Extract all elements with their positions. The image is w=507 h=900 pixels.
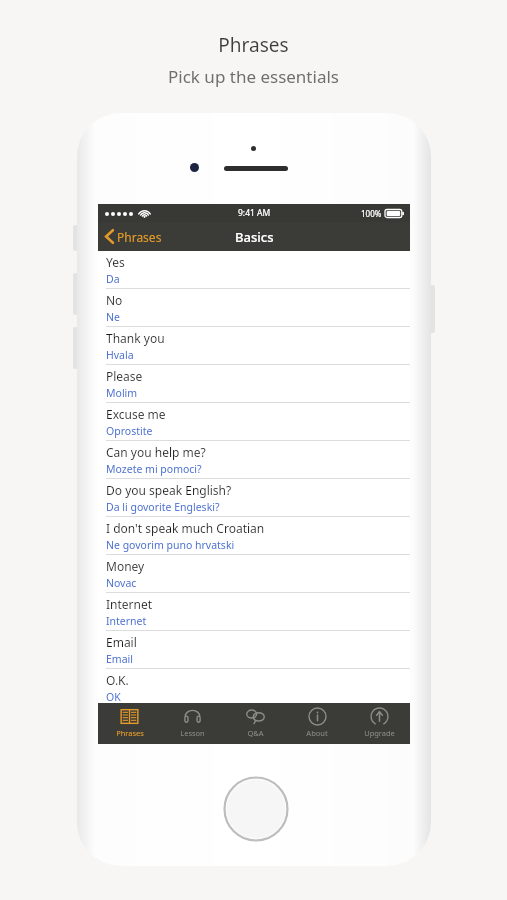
- button[interactable]: Yes: [98, 251, 410, 289]
- button[interactable]: No: [98, 289, 410, 327]
- staticText: Internet: [106, 596, 153, 612]
- staticText: Money: [106, 558, 145, 574]
- staticText: Yes: [106, 254, 125, 270]
- staticText: Basics: [235, 228, 274, 246]
- staticText: Phrases: [116, 728, 144, 738]
- staticText: Da: [106, 272, 120, 286]
- staticText: Oprostite: [106, 424, 153, 438]
- staticText: Ne govorim puno hrvatski: [106, 538, 235, 552]
- staticText: Hvala: [106, 348, 134, 362]
- staticText: Do you speak English?: [106, 482, 232, 498]
- button[interactable]: Please: [98, 365, 410, 403]
- button[interactable]: Email: [98, 631, 410, 669]
- button[interactable]: Lesson: [161, 703, 224, 744]
- staticText: Novac: [106, 576, 137, 590]
- staticText: Email: [106, 652, 133, 666]
- button[interactable]: Phrases: [98, 703, 161, 744]
- staticText: I don't speak much Croatian: [106, 520, 265, 536]
- staticText: Phrases: [218, 32, 289, 58]
- staticText: Email: [106, 634, 137, 650]
- staticText: Internet: [106, 614, 147, 628]
- staticText: 100%: [361, 208, 382, 219]
- staticText: Please: [106, 368, 143, 384]
- button[interactable]: Internet: [98, 593, 410, 631]
- staticText: About: [306, 728, 328, 738]
- button[interactable]: Q&A: [224, 703, 286, 744]
- staticText: Mozete mi pomoci?: [106, 462, 202, 476]
- staticText: Upgrade: [364, 728, 395, 738]
- button[interactable]: Money: [98, 555, 410, 593]
- button[interactable]: Excuse me: [98, 403, 410, 441]
- staticText: Q&A: [247, 728, 264, 738]
- button[interactable]: Can you help me?: [98, 441, 410, 479]
- button[interactable]: About: [286, 703, 348, 744]
- button[interactable]: O.K.: [98, 669, 410, 703]
- staticText: No: [106, 292, 123, 308]
- button[interactable]: I don't speak much Croatian: [98, 517, 410, 555]
- staticText: Excuse me: [106, 406, 166, 422]
- staticText: O.K.: [106, 672, 129, 688]
- button[interactable]: Upgrade: [348, 703, 410, 744]
- staticText: Ne: [106, 310, 120, 324]
- staticText: Can you help me?: [106, 444, 206, 460]
- button[interactable]: Home: [223, 776, 289, 842]
- staticText: Pick up the essentials: [168, 65, 339, 88]
- staticText: Thank you: [106, 330, 165, 346]
- button[interactable]: Phrases: [98, 222, 170, 251]
- button[interactable]: Thank you: [98, 327, 410, 365]
- button[interactable]: Do you speak English?: [98, 479, 410, 517]
- staticText: 9:41 AM: [238, 207, 271, 219]
- staticText: Phrases: [117, 229, 162, 245]
- staticText: Lesson: [180, 728, 205, 738]
- staticText: Molim: [106, 386, 138, 400]
- staticText: OK: [106, 690, 121, 703]
- staticText: Da li govorite Engleski?: [106, 500, 220, 514]
